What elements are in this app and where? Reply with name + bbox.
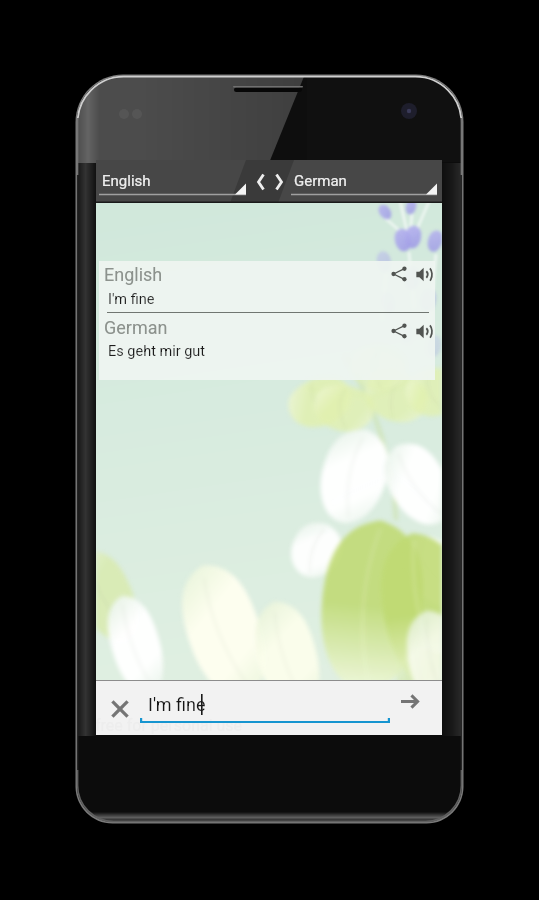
staticText: free for personal use xyxy=(96,716,243,735)
button[interactable]: Share xyxy=(387,262,411,286)
button[interactable]: Swap languages xyxy=(250,160,290,203)
button[interactable]: German xyxy=(291,160,437,203)
button[interactable]: Translate xyxy=(394,685,426,717)
button[interactable]: Clear xyxy=(104,693,136,725)
button[interactable] xyxy=(99,261,435,312)
staticText: German xyxy=(104,317,168,338)
button[interactable]: Speak xyxy=(412,262,436,286)
staticText: English xyxy=(102,172,151,190)
button[interactable]: English xyxy=(99,160,246,203)
button[interactable]: Share xyxy=(387,319,411,343)
staticText: I'm fine xyxy=(108,291,155,308)
staticText: Es geht mir gut xyxy=(108,343,206,360)
button[interactable] xyxy=(99,312,435,380)
button[interactable]: Speak xyxy=(412,319,436,343)
staticText: English xyxy=(104,264,163,285)
staticText: I'm fine xyxy=(148,694,206,715)
staticText: German xyxy=(294,172,347,190)
